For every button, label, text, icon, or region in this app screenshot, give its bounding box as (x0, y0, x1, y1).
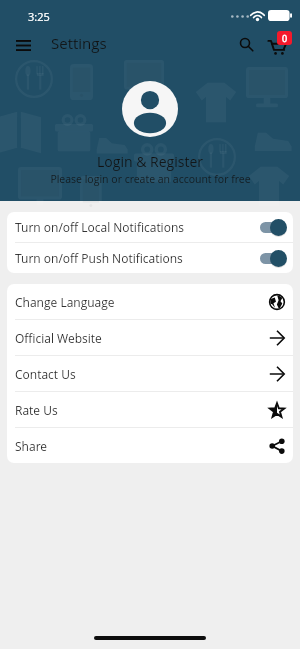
staticText: 0 (282, 32, 288, 44)
staticText: Settings (51, 33, 107, 53)
button[interactable]: Search (233, 31, 260, 58)
button[interactable]: Menu (9, 31, 37, 59)
staticText: Rate Us (15, 402, 269, 418)
staticText: Official Website (15, 330, 269, 346)
button[interactable]: Turn on/off Local Notifications (7, 212, 293, 242)
staticText: Please login or create an account for fr… (50, 172, 251, 186)
staticText: 3:25 (28, 9, 50, 24)
staticText: Turn on/off Local Notifications (15, 219, 260, 235)
button[interactable]: Rate Us (7, 392, 293, 427)
staticText: Turn on/off Push Notifications (15, 250, 260, 266)
button[interactable]: Turn on/off Push Notifications (7, 243, 293, 273)
staticText: Share (15, 438, 269, 454)
button[interactable]: Official Website (7, 320, 293, 355)
button[interactable]: Shopping cart (263, 31, 290, 58)
staticText: Change Language (15, 294, 269, 310)
button[interactable]: Contact Us (7, 356, 293, 391)
staticText: Login & Register (97, 152, 203, 171)
staticText: Contact Us (15, 366, 269, 382)
button[interactable]: Share (7, 428, 293, 463)
button[interactable]: Change Language (7, 284, 293, 319)
